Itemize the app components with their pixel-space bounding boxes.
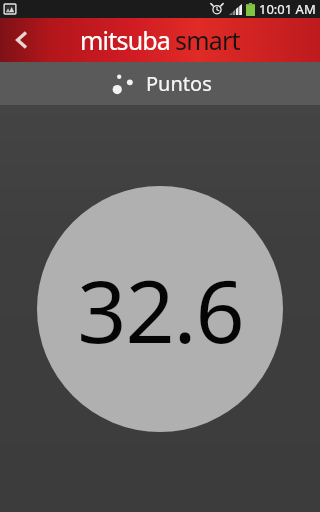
button[interactable]: Puntos xyxy=(0,62,320,105)
staticText: 10:01 AM xyxy=(259,0,316,18)
button[interactable]: 32.6 xyxy=(37,186,283,432)
staticText: mitsuba xyxy=(80,23,171,57)
staticText: 32.6 xyxy=(77,251,244,368)
button[interactable]: Back xyxy=(0,18,44,62)
staticText: Puntos xyxy=(146,70,212,97)
staticText: smart xyxy=(175,23,240,57)
